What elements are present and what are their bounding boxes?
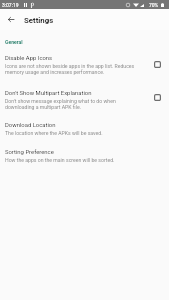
staticText: Don't Show Multipart Explanation bbox=[5, 90, 92, 97]
button[interactable]: Disable App Icons bbox=[0, 51, 169, 86]
staticText: Download Location bbox=[5, 122, 56, 129]
button[interactable]: Toggle setting bbox=[150, 90, 164, 104]
staticText: 70% bbox=[149, 2, 159, 8]
staticText: How the apps on the main screen will be … bbox=[5, 157, 115, 163]
staticText: Sorting Preference bbox=[5, 149, 54, 156]
button[interactable]: Toggle setting bbox=[150, 57, 164, 71]
staticText: The location where the APKs will be save… bbox=[5, 130, 103, 136]
button[interactable]: Don't Show Multipart Explanation bbox=[0, 86, 169, 118]
staticText: Settings bbox=[24, 16, 54, 25]
staticText: Icons are not shown beside apps in the a… bbox=[5, 63, 141, 75]
button[interactable]: Back bbox=[4, 12, 18, 26]
staticText: General bbox=[5, 39, 23, 45]
staticText: Don't show message explaining what to do… bbox=[5, 98, 141, 110]
button[interactable]: Download Location bbox=[0, 118, 169, 145]
button[interactable]: Sorting Preference bbox=[0, 145, 169, 172]
staticText: Disable App Icons bbox=[5, 55, 53, 62]
staticText: 3:07:19 bbox=[2, 2, 19, 8]
